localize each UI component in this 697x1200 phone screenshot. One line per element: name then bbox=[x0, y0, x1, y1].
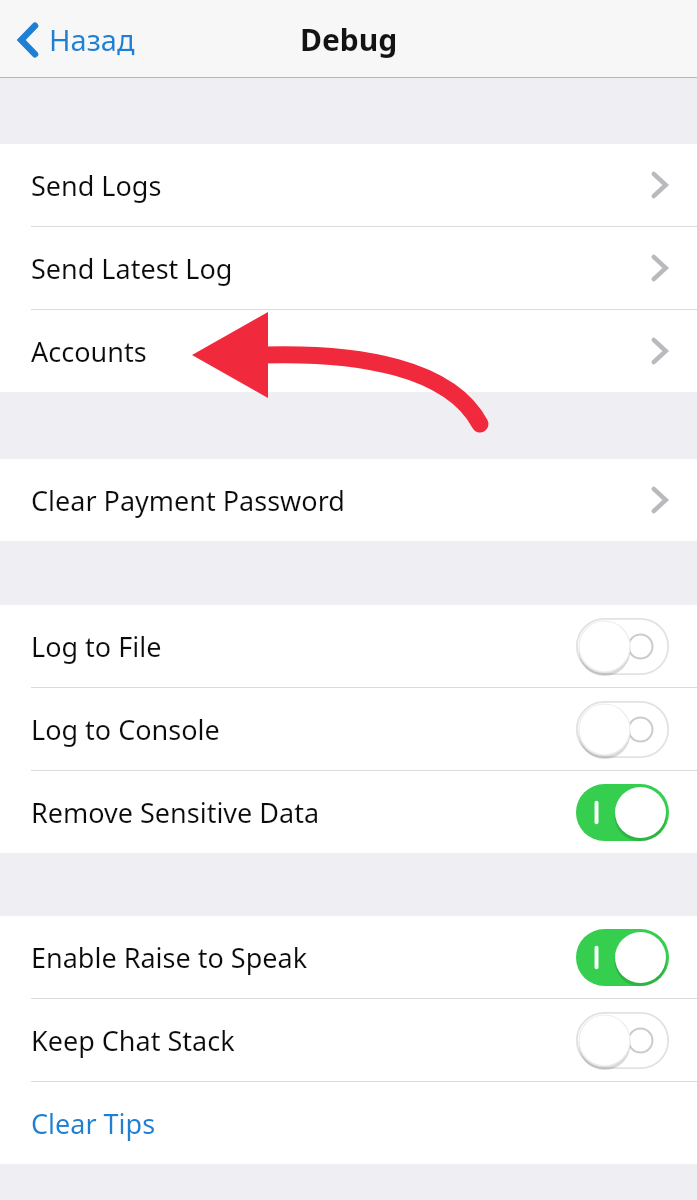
button[interactable]: Clear Payment Password bbox=[0, 459, 697, 541]
button[interactable]: Toggle off bbox=[576, 618, 669, 675]
button[interactable]: Toggle on bbox=[576, 784, 669, 841]
button[interactable]: Remove Sensitive Data bbox=[0, 771, 697, 853]
staticText: Send Latest Log bbox=[31, 250, 233, 287]
staticText: Clear Payment Password bbox=[31, 482, 345, 519]
button[interactable]: Send Logs bbox=[0, 144, 697, 226]
staticText: Remove Sensitive Data bbox=[31, 794, 320, 831]
staticText: Log to File bbox=[31, 628, 162, 665]
button[interactable]: Toggle off bbox=[576, 701, 669, 758]
staticText: Accounts bbox=[31, 333, 147, 370]
button[interactable]: Toggle off bbox=[576, 1012, 669, 1069]
staticText: Send Logs bbox=[31, 167, 162, 204]
staticText: Log to Console bbox=[31, 711, 220, 748]
staticText: Debug bbox=[300, 19, 398, 60]
button[interactable]: Back bbox=[12, 14, 141, 65]
button[interactable]: Accounts bbox=[0, 310, 697, 392]
button[interactable]: Log to File bbox=[0, 605, 697, 687]
button[interactable]: Keep Chat Stack bbox=[0, 999, 697, 1081]
button[interactable]: Toggle on bbox=[576, 929, 669, 986]
button[interactable]: Log to Console bbox=[0, 688, 697, 770]
button[interactable]: Enable Raise to Speak bbox=[0, 916, 697, 998]
staticText: Clear Tips bbox=[31, 1105, 156, 1142]
staticText: Enable Raise to Speak bbox=[31, 939, 308, 976]
button[interactable]: Send Latest Log bbox=[0, 227, 697, 309]
button[interactable]: Clear Tips bbox=[0, 1082, 697, 1164]
staticText: Назад bbox=[49, 20, 135, 59]
staticText: Keep Chat Stack bbox=[31, 1022, 235, 1059]
